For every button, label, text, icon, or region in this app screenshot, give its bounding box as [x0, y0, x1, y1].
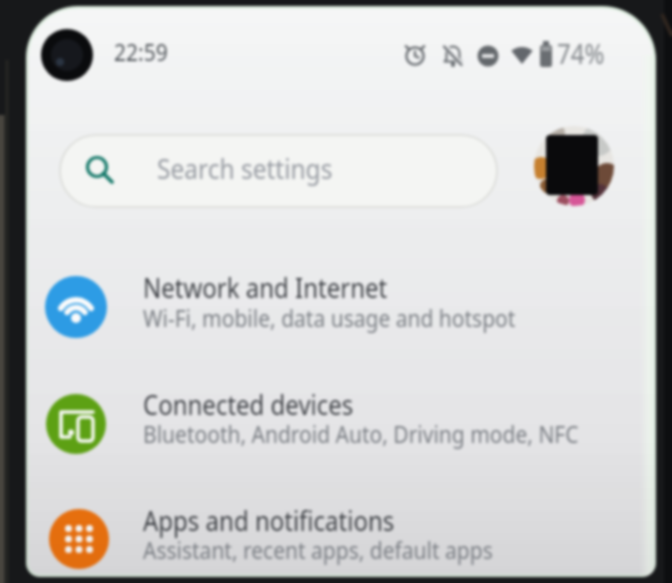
- staticText: Bluetooth, Android Auto, Driving mode, N…: [143, 418, 579, 451]
- staticText: Connected devices: [143, 386, 354, 423]
- staticText: Network and Internet: [143, 269, 388, 306]
- staticText: Apps and notifications: [143, 502, 395, 539]
- staticText: Search settings: [157, 150, 333, 187]
- staticText: 22:59: [114, 36, 168, 69]
- button[interactable]: [26, 258, 656, 358]
- staticText: Wi-Fi, mobile, data usage and hotspot: [143, 302, 516, 335]
- button[interactable]: [26, 375, 656, 475]
- button[interactable]: [532, 133, 598, 199]
- button[interactable]: [60, 135, 497, 207]
- staticText: 74%: [557, 35, 605, 72]
- button[interactable]: [26, 492, 656, 583]
- staticText: Assistant, recent apps, default apps: [143, 534, 493, 567]
